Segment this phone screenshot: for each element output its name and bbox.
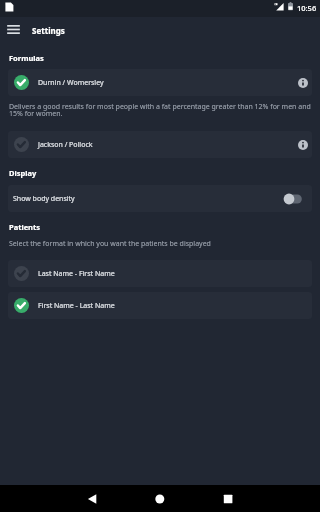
staticText: Jackson / Pollock	[38, 140, 93, 150]
staticText: Settings	[32, 25, 65, 36]
staticText: Delivers a good results for most people …	[9, 102, 312, 119]
staticText: 10:56	[297, 3, 317, 13]
button[interactable]: Info	[293, 135, 312, 154]
staticText: Patients	[9, 222, 41, 232]
button[interactable]: Jackson / Pollock	[8, 131, 312, 158]
staticText: Display	[9, 168, 37, 178]
button[interactable]: Open navigation drawer	[2, 18, 25, 41]
staticText: Durnin / Womersley	[38, 78, 104, 88]
button[interactable]: Info	[293, 73, 312, 92]
button[interactable]: Last Name - First Name	[8, 260, 312, 287]
staticText: Select the format in which you want the …	[9, 239, 211, 249]
staticText: Last Name - First Name	[38, 269, 115, 279]
button[interactable]: Show body density toggle	[280, 190, 312, 208]
button[interactable]: First Name - Last Name	[8, 292, 312, 319]
button[interactable]: Show body density	[8, 185, 312, 212]
staticText: Show body density	[13, 194, 75, 204]
button[interactable]: Durnin / Womersley	[8, 69, 312, 96]
staticText: Formulas	[9, 53, 44, 63]
staticText: First Name - Last Name	[38, 301, 115, 311]
